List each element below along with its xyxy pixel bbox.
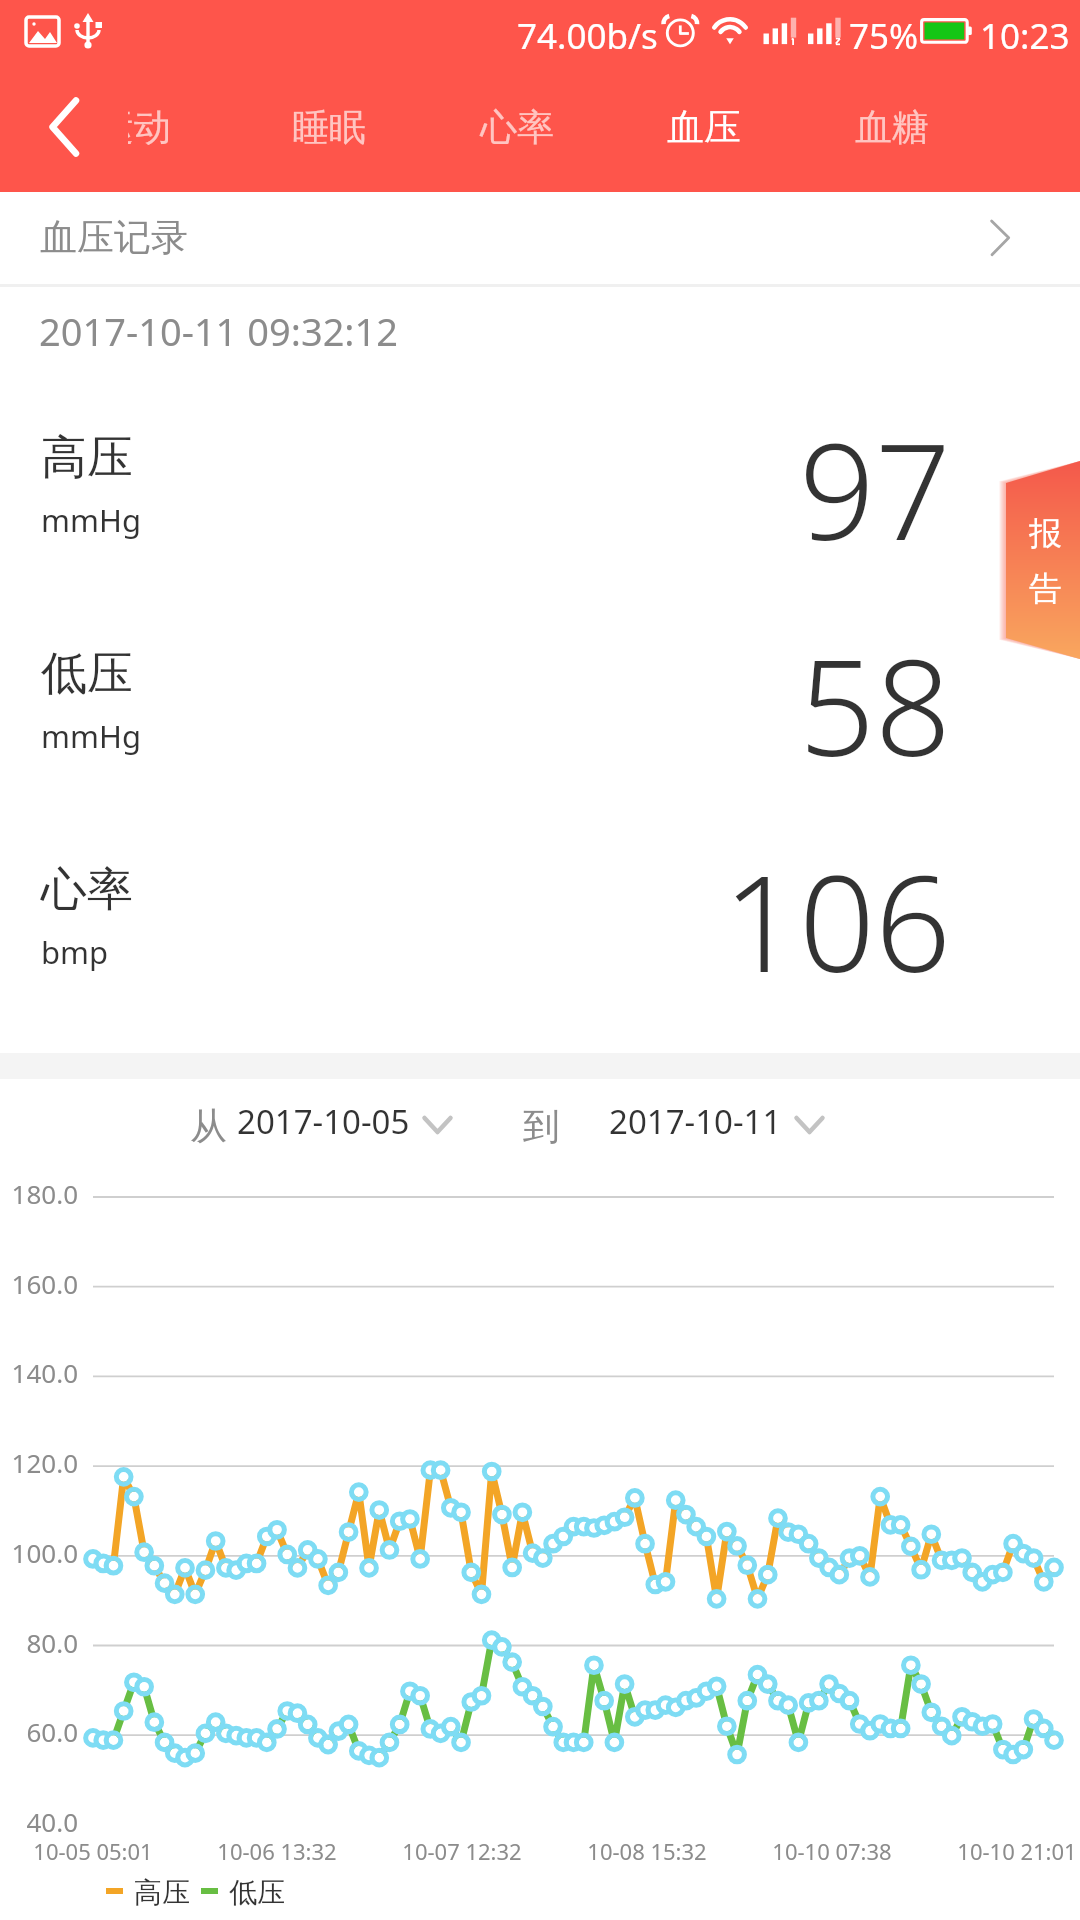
staticText: 2017-10-11 xyxy=(609,1099,782,1144)
staticText: 高压 xyxy=(134,1875,190,1910)
staticText: 106 xyxy=(723,830,951,1011)
staticText: 100.0 xyxy=(0,1535,78,1570)
staticText: 75% xyxy=(849,12,919,60)
staticText: 180.0 xyxy=(0,1176,78,1211)
staticText: 60.0 xyxy=(0,1714,78,1749)
staticText: 10-08 15:32 xyxy=(557,1836,737,1866)
button[interactable]: 睡眠 xyxy=(239,67,419,187)
staticText: 10-07 12:32 xyxy=(372,1836,552,1866)
staticText: 低压 xyxy=(41,645,133,703)
staticText: 血压记录 xyxy=(40,214,188,261)
staticText: 高压 xyxy=(41,429,133,487)
button[interactable]: 血压 xyxy=(614,67,794,187)
staticText: 低压 xyxy=(229,1875,285,1910)
staticText: 80.0 xyxy=(0,1625,78,1660)
staticText: 血压 xyxy=(667,104,741,151)
button[interactable]: Back xyxy=(20,87,100,167)
staticText: 40.0 xyxy=(0,1804,78,1839)
button[interactable]: 心率 xyxy=(427,67,607,187)
staticText: 睡眠 xyxy=(292,104,366,151)
staticText: 10-06 13:32 xyxy=(187,1836,367,1866)
staticText: 报 xyxy=(1029,513,1062,555)
staticText: 2017-10-05 xyxy=(237,1099,410,1144)
staticText: 心率 xyxy=(41,861,133,919)
staticText: 58 xyxy=(799,614,951,795)
staticText: 10:23 xyxy=(980,12,1070,60)
staticText: 74.00b/s xyxy=(517,12,658,60)
staticText: 97 xyxy=(799,398,951,579)
button[interactable]: 2017-10-11 xyxy=(609,1099,825,1144)
button[interactable]: 血压记录 xyxy=(0,192,1080,283)
button[interactable]: 2017-10-05 xyxy=(237,1099,453,1144)
staticText: 120.0 xyxy=(0,1445,78,1480)
staticText: 10-10 07:38 xyxy=(742,1836,922,1866)
staticText: 10-10 21:01 xyxy=(927,1836,1080,1866)
button[interactable]: Report xyxy=(1000,455,1080,667)
staticText: mmHg xyxy=(41,499,142,541)
staticText: 160.0 xyxy=(0,1266,78,1301)
staticText: 运动 xyxy=(128,104,171,151)
staticText: 2017-10-11 09:32:12 xyxy=(39,305,399,357)
staticText: 告 xyxy=(1029,568,1062,610)
staticText: 140.0 xyxy=(0,1355,78,1390)
staticText: 到 xyxy=(523,1103,560,1150)
staticText: mmHg xyxy=(41,715,142,757)
staticText: bmp xyxy=(41,931,109,973)
staticText: 血糖 xyxy=(855,104,929,151)
button[interactable]: 运动 xyxy=(128,67,238,187)
button[interactable]: 血糖 xyxy=(802,67,982,187)
staticText: 从 xyxy=(190,1103,227,1150)
staticText: 心率 xyxy=(480,104,554,151)
staticText: 10-05 05:01 xyxy=(3,1836,183,1866)
